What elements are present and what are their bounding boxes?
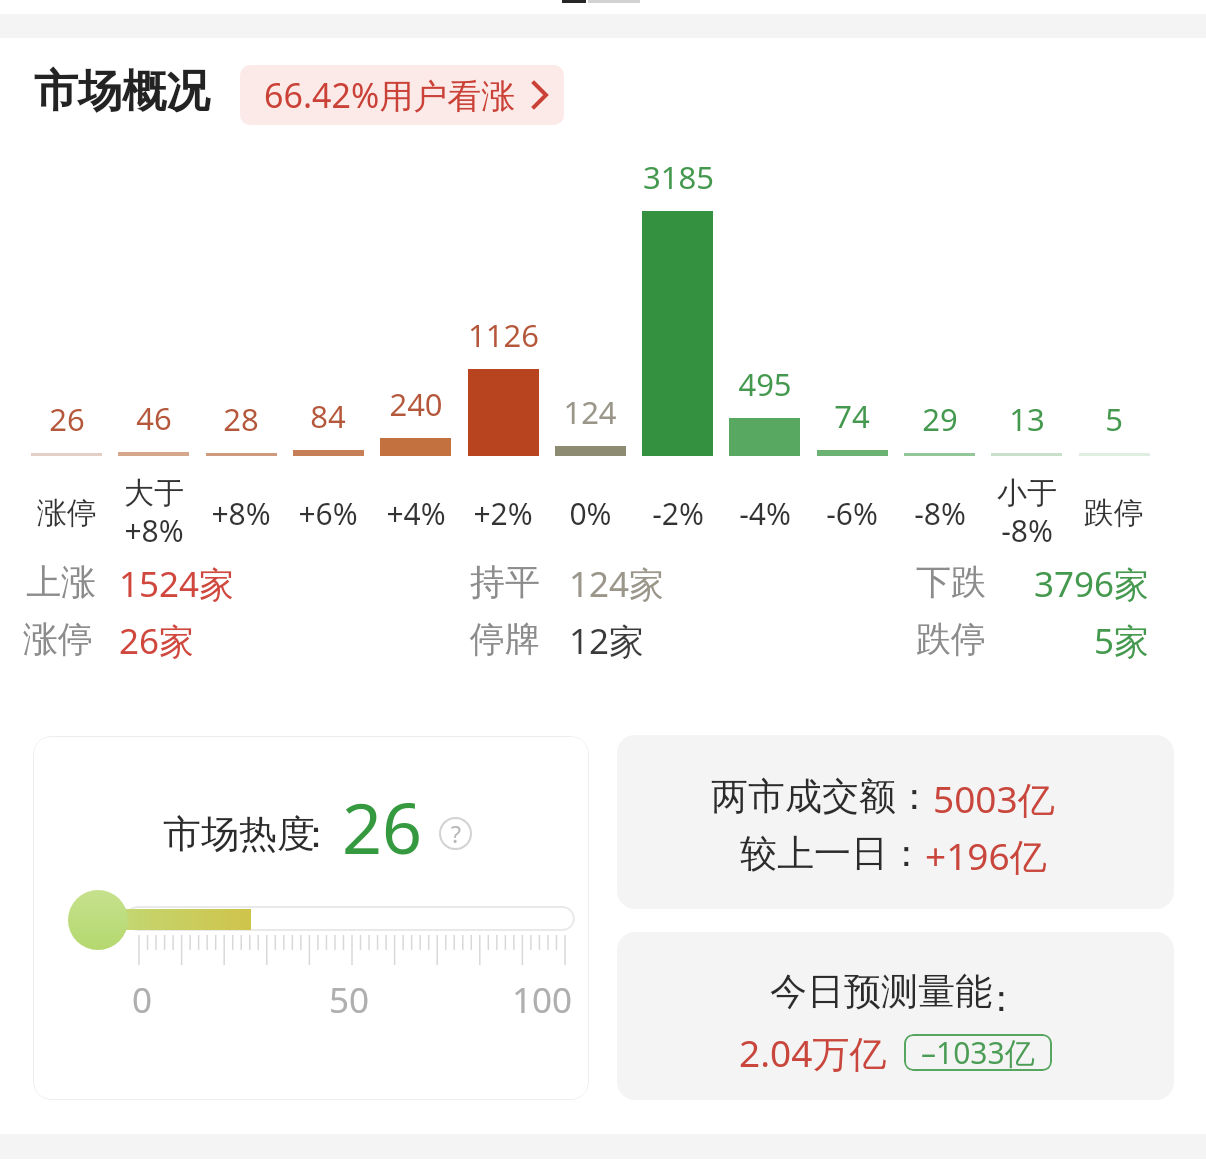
staticText: 市场热度 <box>163 810 315 858</box>
staticText: +8% <box>124 510 184 551</box>
staticText: -8% <box>914 493 966 534</box>
staticText: 5003亿 <box>933 773 1055 821</box>
button[interactable]: -4% 495 <box>721 150 808 550</box>
button[interactable]: -8% 29 <box>896 150 983 550</box>
staticText: 小于 <box>997 474 1057 512</box>
staticText: 28 <box>223 398 259 440</box>
staticText: 5 <box>1105 398 1123 440</box>
staticText: 市场概况 <box>34 64 210 119</box>
staticText: 停牌 <box>470 617 540 661</box>
button[interactable]: +4% 240 <box>372 150 459 550</box>
button[interactable]: 今日预测量能 <box>617 932 1174 1100</box>
staticText: +2% <box>473 493 533 534</box>
staticText: +6% <box>298 493 358 534</box>
staticText: ? <box>451 818 461 849</box>
staticText: 74 <box>834 395 870 437</box>
staticText: 0% <box>569 493 612 534</box>
staticText: –1033亿 <box>921 1034 1035 1069</box>
staticText: 3185 <box>643 156 714 198</box>
staticText: 3796家 <box>1033 560 1149 608</box>
staticText: 1126 <box>468 314 539 356</box>
staticText: ： <box>983 975 1020 1022</box>
staticText: -8% <box>1001 510 1053 551</box>
staticText: 84 <box>310 395 346 437</box>
button[interactable]: +2% 1126 <box>459 150 546 550</box>
staticText: 涨停 <box>23 617 93 661</box>
button[interactable]: 小于-8% 13 <box>983 150 1070 550</box>
staticText: -2% <box>652 493 704 534</box>
staticText: 240 <box>389 383 443 425</box>
button[interactable]: +6% 84 <box>285 150 372 550</box>
staticText: 26 <box>49 398 85 440</box>
staticText: ： <box>297 810 335 858</box>
button[interactable]: -2% 3185 <box>634 150 721 550</box>
button[interactable]: 66.42%用户看涨 <box>240 65 564 125</box>
staticText: 26 <box>342 779 423 871</box>
staticText: 跌停 <box>916 617 986 661</box>
staticText: 较上一日： <box>740 830 925 877</box>
staticText: 124家 <box>569 560 665 608</box>
button[interactable]: 跌停 5 <box>1070 150 1157 550</box>
button[interactable]: -6% 74 <box>809 150 896 550</box>
staticText: 495 <box>738 363 792 405</box>
staticText: -6% <box>826 493 878 534</box>
button[interactable]: 大于+8% 46 <box>110 150 197 550</box>
staticText: 13 <box>1009 398 1045 440</box>
staticText: +8% <box>211 493 271 534</box>
button[interactable]: 涨停 26 <box>23 150 110 550</box>
staticText: -4% <box>739 493 791 534</box>
staticText: 2.04万亿 <box>739 1027 887 1077</box>
staticText: 46 <box>136 397 172 439</box>
staticText: 涨停 <box>37 494 97 532</box>
staticText: 5家 <box>1093 617 1149 665</box>
staticText: +4% <box>386 493 446 534</box>
staticText: 12家 <box>569 617 645 665</box>
staticText: 下跌 <box>916 560 986 604</box>
staticText: 跌停 <box>1084 494 1144 532</box>
button[interactable]: 市场热度 <box>33 736 589 1100</box>
staticText: 上涨 <box>26 560 96 604</box>
staticText: 29 <box>922 398 958 440</box>
button[interactable]: 帮助 <box>439 817 472 850</box>
staticText: 124 <box>563 391 617 433</box>
staticText: 100 <box>512 976 573 1024</box>
staticText: +196亿 <box>925 830 1047 878</box>
staticText: 66.42%用户看涨 <box>264 72 516 118</box>
staticText: 今日预测量能 <box>770 968 992 1014</box>
staticText: 持平 <box>470 560 540 604</box>
staticText: 两市成交额： <box>711 773 933 820</box>
staticText: 1524家 <box>119 560 235 608</box>
staticText: 50 <box>329 976 370 1024</box>
button[interactable]: 两市成交额： <box>617 735 1174 909</box>
staticText: 26家 <box>119 617 195 665</box>
button[interactable]: +8% 28 <box>197 150 284 550</box>
button[interactable]: 0% 124 <box>547 150 634 550</box>
staticText: 0 <box>132 976 153 1024</box>
staticText: 大于 <box>124 474 184 512</box>
